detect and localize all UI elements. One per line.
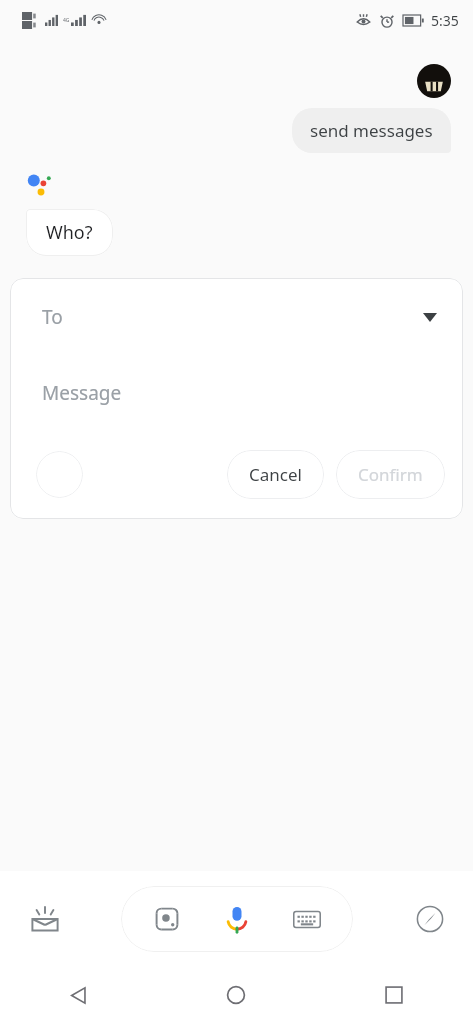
staticText: Confirm bbox=[358, 463, 423, 486]
button[interactable]: send messages bbox=[292, 108, 451, 153]
button[interactable]: Explore bbox=[407, 896, 453, 942]
staticText: Cancel bbox=[249, 463, 302, 486]
staticText: send messages bbox=[310, 119, 433, 142]
staticText: 4G bbox=[63, 17, 70, 24]
other: Choose recipient bbox=[423, 313, 437, 322]
button[interactable]: Back bbox=[0, 966, 157, 1024]
button[interactable]: Google Lens bbox=[145, 897, 189, 941]
button[interactable]: Message bbox=[10, 378, 463, 408]
staticText: 5:35 bbox=[431, 11, 459, 30]
button[interactable]: Cancel bbox=[227, 450, 324, 499]
staticText: To bbox=[42, 304, 63, 330]
button[interactable]: Confirm bbox=[336, 450, 445, 499]
button[interactable]: To bbox=[10, 278, 463, 340]
button[interactable]: Who? bbox=[26, 209, 113, 256]
button[interactable]: Voice search bbox=[213, 895, 261, 943]
staticText: Message bbox=[42, 380, 122, 406]
other: Google Assistant bbox=[26, 171, 56, 201]
button[interactable]: Home bbox=[157, 966, 315, 1024]
button[interactable]: Keyboard bbox=[285, 897, 329, 941]
button[interactable]: Recent apps bbox=[315, 966, 473, 1024]
button[interactable]: Account avatar bbox=[417, 64, 451, 98]
button[interactable]: Snapshot bbox=[22, 896, 68, 942]
staticText: Who? bbox=[46, 220, 93, 245]
